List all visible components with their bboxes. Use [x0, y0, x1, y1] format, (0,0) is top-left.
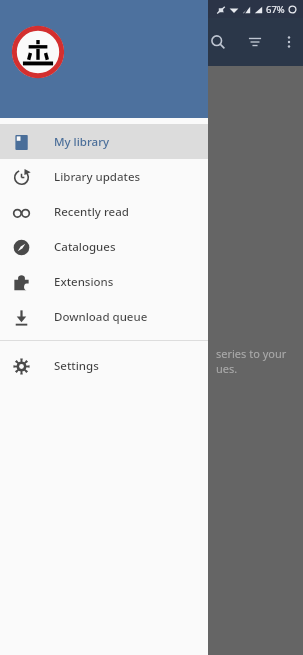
button[interactable]: Filter: [237, 24, 273, 60]
button[interactable]: More options: [274, 24, 303, 60]
button[interactable]: Recently read: [0, 194, 208, 229]
button[interactable]: Catalogues: [0, 229, 208, 264]
staticText: ues.: [216, 361, 238, 376]
staticText: My library: [54, 134, 110, 150]
staticText: Settings: [54, 358, 99, 374]
button[interactable]: Extensions: [0, 264, 208, 299]
button[interactable]: Settings: [0, 348, 208, 383]
button[interactable]: My library: [0, 124, 208, 159]
button[interactable]: Library updates: [0, 159, 208, 194]
staticText: Catalogues: [54, 239, 116, 255]
staticText: 67%: [266, 3, 285, 16]
staticText: Library updates: [54, 169, 141, 185]
button[interactable]: Download queue: [0, 299, 208, 334]
staticText: series to your: [216, 346, 287, 361]
staticText: Download queue: [54, 309, 148, 325]
button[interactable]: Search: [200, 24, 236, 60]
staticText: Recently read: [54, 204, 129, 220]
staticText: Extensions: [54, 274, 114, 290]
